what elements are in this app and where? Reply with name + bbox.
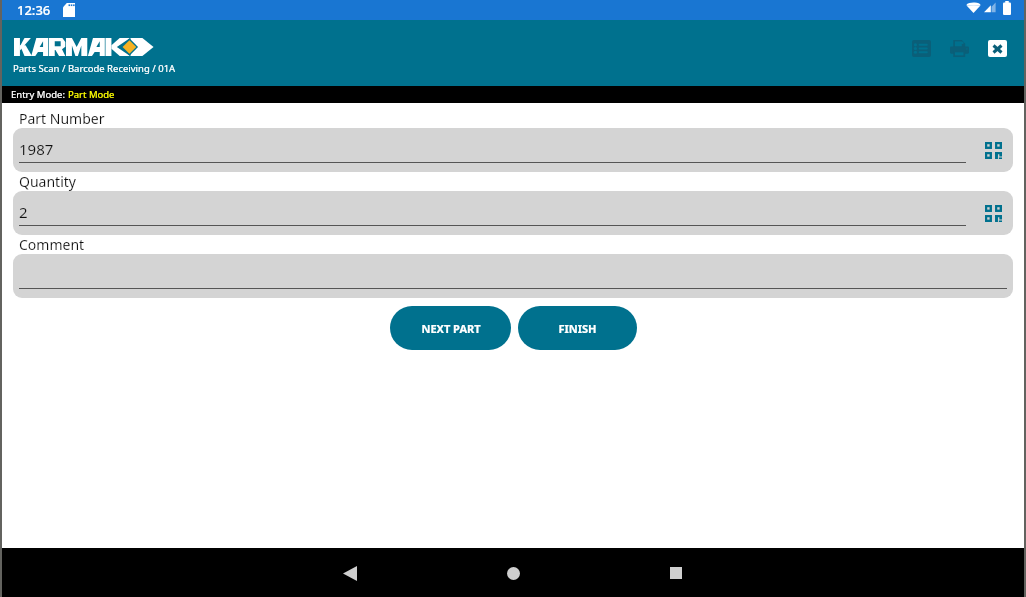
button[interactable] — [13, 254, 1013, 298]
button[interactable]: Print — [946, 35, 972, 61]
staticText: Part Number — [19, 109, 105, 128]
button[interactable]: NEXT PART — [390, 306, 511, 350]
staticText: 12:36 — [17, 1, 51, 19]
staticText: Quantity — [19, 172, 76, 191]
staticText: 1987 — [19, 139, 54, 159]
button[interactable]: Close — [984, 35, 1010, 61]
button[interactable]: Scan barcode — [981, 138, 1005, 162]
button[interactable]: List view — [908, 35, 934, 61]
button[interactable]: Back — [326, 549, 374, 597]
button[interactable]: Recent apps — [652, 549, 700, 597]
button[interactable]: Scan barcode — [981, 201, 1005, 225]
button[interactable]: 2 — [13, 191, 1013, 235]
button[interactable]: 1987 — [13, 128, 1013, 172]
staticText: Parts Scan / Barcode Receiving / 01A — [13, 62, 176, 75]
staticText: Entry Mode: — [11, 88, 68, 101]
staticText: FINISH — [558, 321, 597, 336]
staticText: Part Mode — [68, 88, 115, 101]
button[interactable]: Home — [489, 549, 537, 597]
staticText: 2 — [19, 202, 28, 222]
staticText: Comment — [19, 235, 85, 254]
button[interactable]: FINISH — [518, 306, 637, 350]
staticText: NEXT PART — [421, 321, 481, 336]
